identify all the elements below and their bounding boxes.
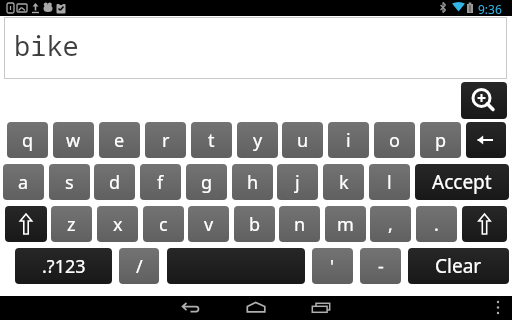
staticText: z bbox=[67, 212, 76, 237]
button[interactable] bbox=[167, 248, 305, 284]
button[interactable]: n bbox=[279, 206, 320, 242]
button[interactable]: z bbox=[51, 206, 92, 242]
button[interactable]: Clear bbox=[408, 248, 509, 284]
staticText: o bbox=[389, 128, 400, 153]
staticText: y bbox=[253, 128, 263, 153]
staticText: k bbox=[339, 170, 349, 195]
button[interactable]: m bbox=[325, 206, 366, 242]
button[interactable]: v bbox=[188, 206, 229, 242]
button[interactable] bbox=[5, 206, 47, 242]
staticText: n bbox=[294, 212, 306, 237]
staticText: . bbox=[434, 212, 439, 237]
button[interactable]: p bbox=[420, 122, 461, 158]
button[interactable]: u bbox=[282, 122, 323, 158]
button[interactable]: bike bbox=[4, 17, 507, 79]
staticText: 9:36 bbox=[478, 1, 502, 17]
button[interactable] bbox=[462, 206, 507, 242]
button[interactable]: a bbox=[3, 164, 44, 200]
staticText: l bbox=[387, 170, 392, 195]
staticText: , bbox=[388, 212, 393, 237]
button[interactable]: . bbox=[416, 206, 457, 242]
button[interactable]: k bbox=[323, 164, 364, 200]
staticText: w bbox=[66, 128, 81, 153]
staticText: r bbox=[162, 128, 170, 153]
staticText: c bbox=[159, 212, 168, 237]
button[interactable]: .?123 bbox=[15, 248, 112, 284]
button[interactable]: c bbox=[143, 206, 184, 242]
staticText: g bbox=[201, 170, 213, 195]
button[interactable]: / bbox=[119, 248, 159, 284]
staticText: Accept bbox=[432, 169, 492, 195]
button[interactable]: e bbox=[99, 122, 140, 158]
button[interactable]: q bbox=[7, 122, 48, 158]
button[interactable]: x bbox=[97, 206, 138, 242]
button[interactable]: w bbox=[53, 122, 94, 158]
button[interactable]: o bbox=[374, 122, 415, 158]
button[interactable]: b bbox=[234, 206, 275, 242]
staticText: f bbox=[157, 170, 164, 195]
button[interactable]: , bbox=[370, 206, 411, 242]
staticText: .?123 bbox=[42, 254, 86, 279]
staticText: v bbox=[204, 212, 214, 237]
staticText: a bbox=[18, 170, 29, 195]
button[interactable]: g bbox=[186, 164, 227, 200]
button[interactable]: ' bbox=[312, 248, 353, 284]
staticText: - bbox=[378, 254, 384, 279]
button[interactable]: - bbox=[360, 248, 401, 284]
staticText: q bbox=[22, 128, 34, 153]
button[interactable]: Accept bbox=[415, 164, 509, 200]
button[interactable] bbox=[242, 296, 272, 320]
button[interactable] bbox=[306, 296, 336, 320]
button[interactable]: j bbox=[277, 164, 318, 200]
button[interactable] bbox=[461, 82, 507, 119]
staticText: h bbox=[247, 170, 259, 195]
staticText: s bbox=[65, 170, 74, 195]
button[interactable]: s bbox=[49, 164, 90, 200]
staticText: d bbox=[109, 170, 121, 195]
staticText: j bbox=[295, 170, 300, 195]
staticText: i bbox=[346, 128, 351, 153]
staticText: m bbox=[337, 212, 354, 237]
staticText: bike bbox=[14, 27, 79, 64]
button[interactable]: r bbox=[145, 122, 186, 158]
button[interactable]: i bbox=[328, 122, 369, 158]
button[interactable]: f bbox=[140, 164, 181, 200]
button[interactable]: h bbox=[232, 164, 273, 200]
button[interactable]: t bbox=[191, 122, 232, 158]
staticText: p bbox=[435, 128, 447, 153]
button[interactable]: d bbox=[94, 164, 135, 200]
staticText: ' bbox=[330, 254, 335, 279]
staticText: u bbox=[297, 128, 309, 153]
button[interactable] bbox=[178, 296, 208, 320]
staticText: x bbox=[113, 212, 123, 237]
button[interactable] bbox=[466, 122, 506, 158]
staticText: Clear bbox=[435, 253, 482, 279]
button[interactable]: y bbox=[237, 122, 278, 158]
staticText: b bbox=[249, 212, 261, 237]
button[interactable]: l bbox=[369, 164, 410, 200]
staticText: t bbox=[208, 128, 215, 153]
staticText: / bbox=[136, 254, 143, 279]
staticText: e bbox=[114, 128, 125, 153]
